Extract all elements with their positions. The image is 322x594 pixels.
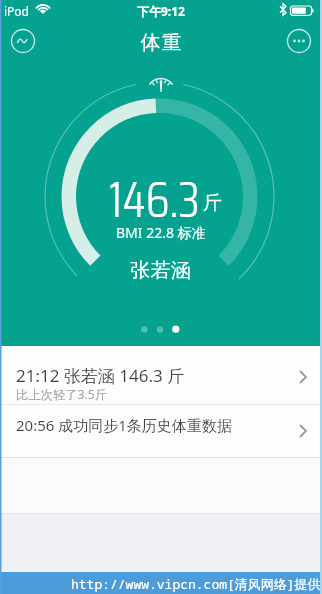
button[interactable]: http://www.vipcn.com[清风网络]提供 bbox=[0, 572, 322, 594]
staticText: 体重 bbox=[140, 30, 182, 55]
staticText: 张若涵 bbox=[130, 258, 192, 283]
staticText: 21:12 张若涵 146.3 斤 bbox=[16, 364, 185, 387]
staticText: 下午9:12 bbox=[137, 3, 185, 19]
staticText: BMI 22.8 标准 bbox=[116, 223, 206, 242]
button[interactable]: 21:12 张若涵 146.3 斤 bbox=[0, 346, 322, 404]
button[interactable] bbox=[285, 27, 313, 55]
staticText: iPod bbox=[4, 3, 29, 19]
staticText: 20:56 成功同步1条历史体重数据 bbox=[16, 415, 232, 435]
staticText: 比上次轻了3.5斤 bbox=[16, 386, 108, 403]
staticText: http://www.vipcn.com[清风网络]提供 bbox=[71, 575, 321, 593]
button[interactable]: 20:56 成功同步1条历史体重数据 bbox=[0, 405, 322, 457]
button[interactable] bbox=[9, 27, 37, 55]
staticText: 斤 bbox=[203, 191, 222, 215]
staticText: 146.3 bbox=[109, 160, 200, 239]
